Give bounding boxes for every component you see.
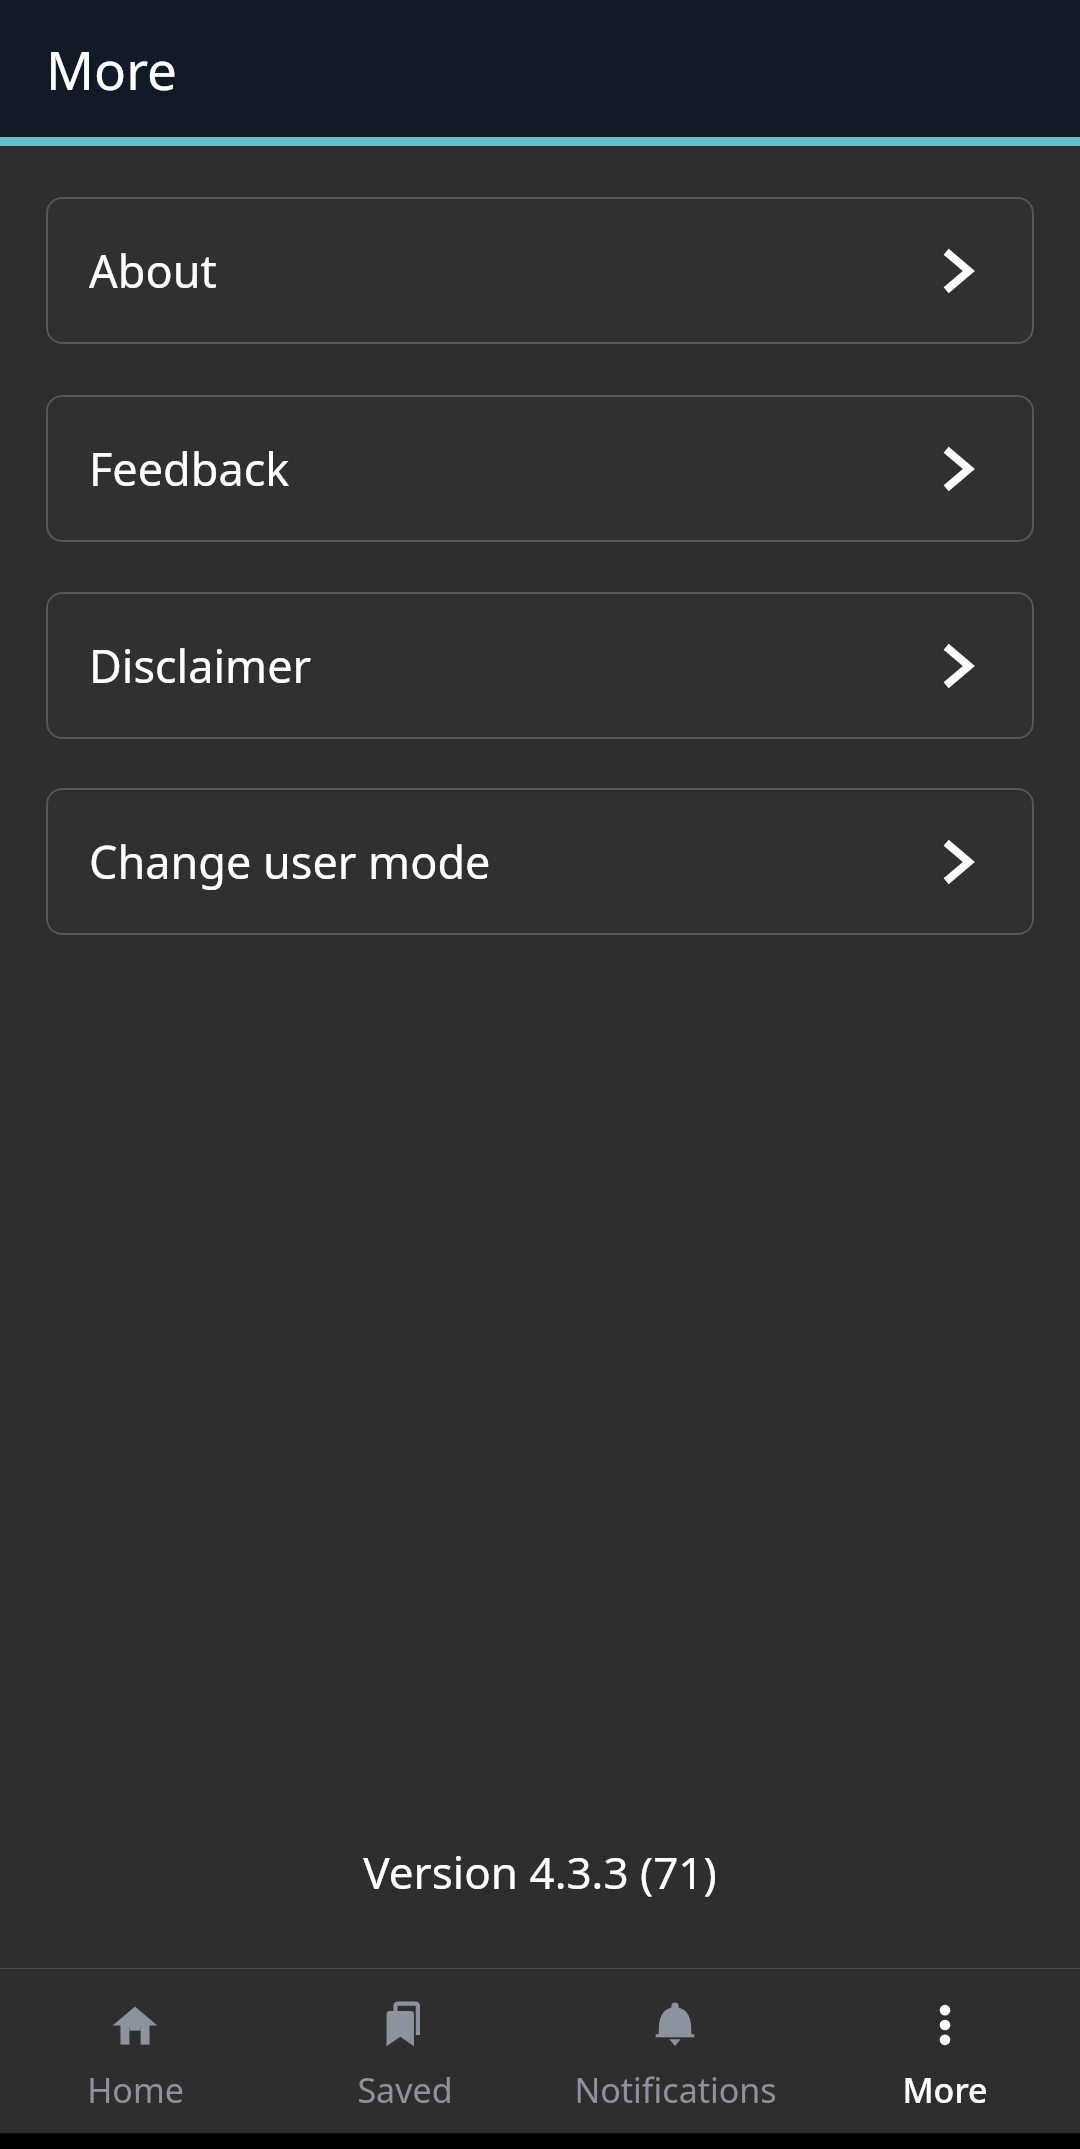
- staticText: Disclaimer: [89, 635, 312, 696]
- staticText: Feedback: [89, 438, 290, 499]
- button[interactable]: Change user mode: [46, 788, 1034, 935]
- button[interactable]: Disclaimer: [46, 592, 1034, 739]
- button[interactable]: More: [810, 1969, 1080, 2113]
- staticText: Saved: [357, 2067, 453, 2113]
- button[interactable]: Notifications: [540, 1969, 810, 2113]
- staticText: More: [902, 2067, 988, 2113]
- staticText: About: [89, 240, 217, 301]
- button[interactable]: Home: [0, 1969, 270, 2113]
- staticText: Version 4.3.3 (71): [0, 1842, 1080, 1902]
- staticText: More: [46, 33, 177, 105]
- button[interactable]: Feedback: [46, 395, 1034, 542]
- button[interactable]: About: [46, 197, 1034, 344]
- staticText: Notifications: [574, 2067, 777, 2113]
- button[interactable]: Saved: [270, 1969, 540, 2113]
- staticText: Home: [87, 2067, 184, 2113]
- staticText: Change user mode: [89, 831, 491, 892]
